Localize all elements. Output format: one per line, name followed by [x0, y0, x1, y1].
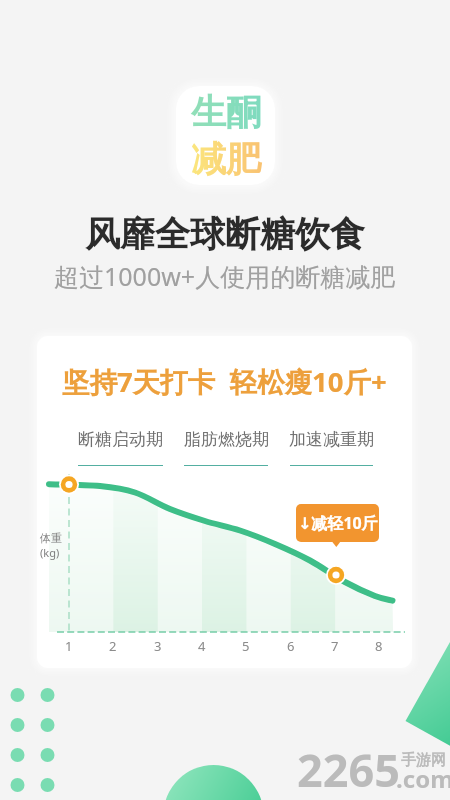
staticText: 体重 — [40, 531, 62, 545]
button[interactable]: 断糖启动期 — [65, 429, 175, 466]
staticText: 减肥 — [191, 137, 261, 181]
staticText: 脂肪燃烧期 — [184, 429, 269, 450]
staticText: 手游网 — [401, 751, 446, 770]
staticText: (kg) — [40, 545, 60, 560]
staticText: 8 — [375, 637, 383, 655]
staticText: 5 — [242, 637, 250, 655]
button[interactable]: 加速减重期 — [276, 429, 386, 466]
staticText: 断糖启动期 — [78, 429, 163, 450]
button[interactable]: 脂肪燃烧期 — [171, 429, 281, 466]
staticText: 1 — [65, 637, 73, 655]
staticText: 坚持7天打卡 轻松瘦10斤+ — [62, 363, 387, 401]
button[interactable]: ↓减轻10斤 — [296, 504, 379, 542]
staticText: .com — [396, 762, 450, 795]
staticText: 4 — [198, 637, 206, 655]
staticText: ↓减轻10斤 — [298, 512, 378, 534]
staticText: 2265 — [297, 739, 400, 800]
staticText: 加速减重期 — [289, 429, 374, 450]
staticText: 3 — [154, 637, 162, 655]
button[interactable]: 生酮减肥 logo — [176, 86, 275, 185]
staticText: 2 — [109, 637, 117, 655]
staticText: 7 — [331, 637, 339, 655]
staticText: 超过1000w+人使用的断糖减肥 — [54, 259, 396, 293]
staticText: 风靡全球断糖饮食 — [85, 212, 365, 256]
staticText: 6 — [287, 637, 295, 655]
staticText: 生酮 — [191, 90, 261, 134]
